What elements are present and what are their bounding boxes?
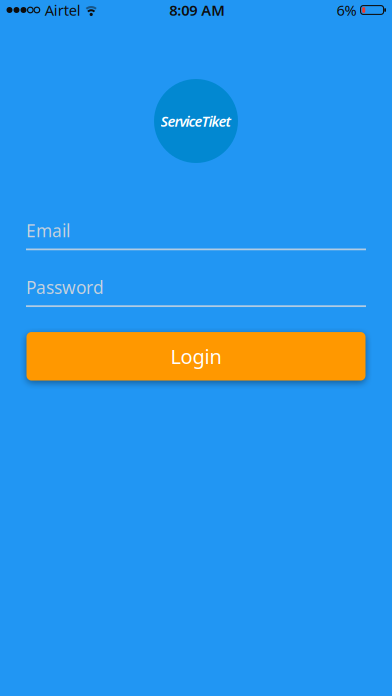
staticText: ServiceTiket — [160, 111, 231, 131]
button[interactable]: Login — [26, 332, 365, 380]
button[interactable]: Email text field — [26, 219, 366, 250]
button[interactable]: Password text field — [26, 276, 366, 307]
staticText: 8:09 AM — [169, 0, 225, 20]
staticText: Login — [170, 343, 221, 370]
staticText: Airtel — [45, 0, 81, 20]
staticText: Email — [26, 219, 70, 242]
staticText: 6% — [337, 0, 357, 20]
staticText: Password — [26, 276, 104, 299]
